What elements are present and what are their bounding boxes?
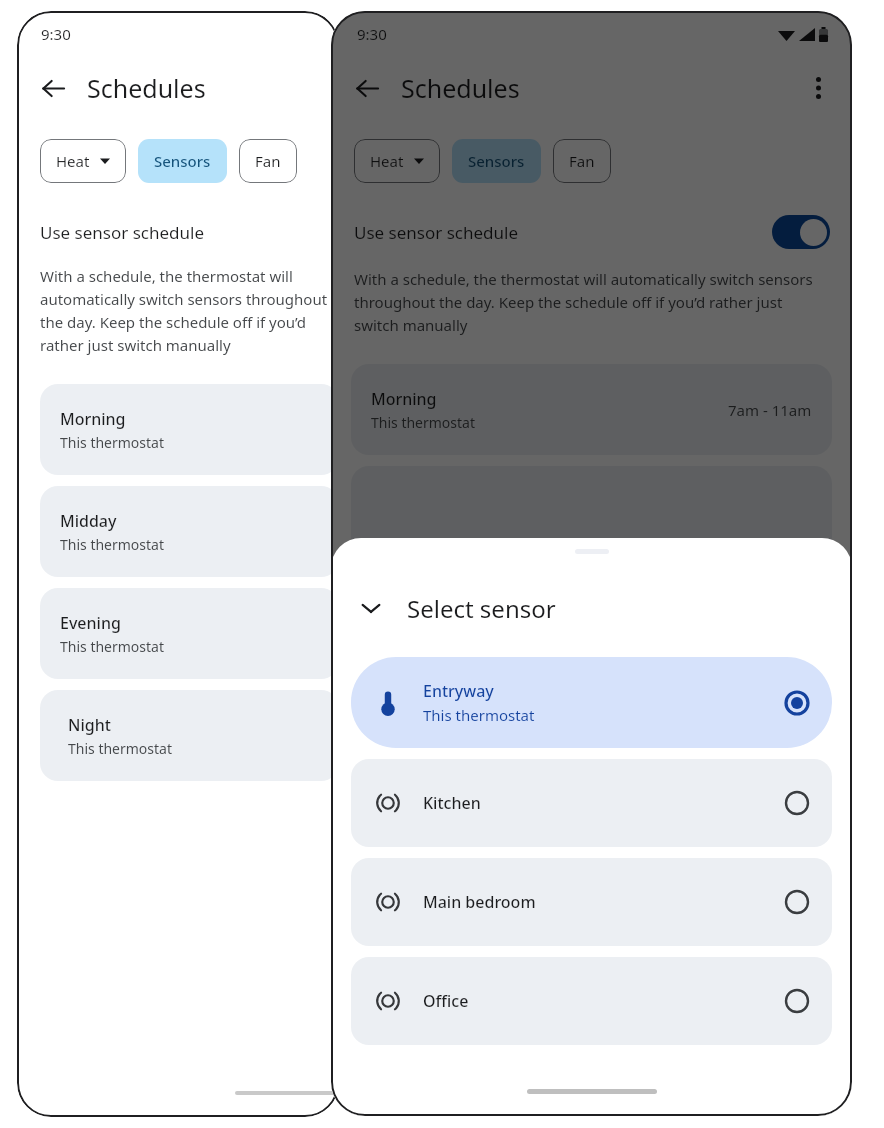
button[interactable]: Entryway [351,657,832,748]
staticText: Sensors [154,151,211,171]
button[interactable]: Evening [40,588,339,679]
button[interactable]: Main bedroom [351,858,832,946]
staticText: Schedules [401,71,520,105]
staticText: 9:30 [357,24,387,44]
staticText: Night [68,714,111,736]
staticText: With a schedule, the thermostat will aut… [354,269,830,335]
staticText: Midday [60,510,117,532]
button[interactable]: Back [347,68,387,108]
button[interactable]: Heat [354,139,440,183]
button[interactable]: More options [798,68,838,108]
button[interactable]: Collapse [351,588,391,628]
staticText: Use sensor schedule [354,221,519,244]
staticText: This thermostat [423,705,535,725]
staticText: This thermostat [60,433,165,452]
button[interactable]: Heat [40,139,126,183]
button[interactable]: Sensors [138,139,227,183]
staticText: Fan [569,151,595,171]
staticText: Fan [255,151,281,171]
staticText: Entryway [423,680,494,702]
staticText: Use sensor schedule [40,221,205,244]
staticText: Schedules [87,71,206,105]
staticText: Evening [60,612,121,634]
button[interactable]: Morning [40,384,339,475]
button[interactable]: Use sensor schedule toggle [772,215,830,249]
staticText: Morning [371,388,437,410]
button[interactable]: Night [40,690,339,781]
button[interactable]: Kitchen [351,759,832,847]
staticText: Morning [60,408,126,430]
button[interactable]: Back [33,68,73,108]
staticText: Heat [56,151,90,171]
button[interactable]: Office [351,957,832,1045]
staticText: With a schedule, the thermostat will aut… [40,266,339,355]
staticText: Heat [370,151,404,171]
staticText: Kitchen [423,792,481,814]
button[interactable]: Sensors [452,139,541,183]
button[interactable]: Fan [239,139,297,183]
staticText: Office [423,990,469,1012]
staticText: This thermostat [60,637,165,656]
staticText: Sensors [468,151,525,171]
staticText: Main bedroom [423,891,536,913]
staticText: Select sensor [407,592,556,625]
staticText: 7am - 11am [728,400,812,420]
button[interactable]: Midday [40,486,339,577]
button[interactable]: Morning [351,364,832,455]
staticText: This thermostat [371,413,476,432]
staticText: This thermostat [60,535,165,554]
staticText: 9:30 [41,24,71,44]
button[interactable]: Fan [553,139,611,183]
staticText: This thermostat [68,739,173,758]
